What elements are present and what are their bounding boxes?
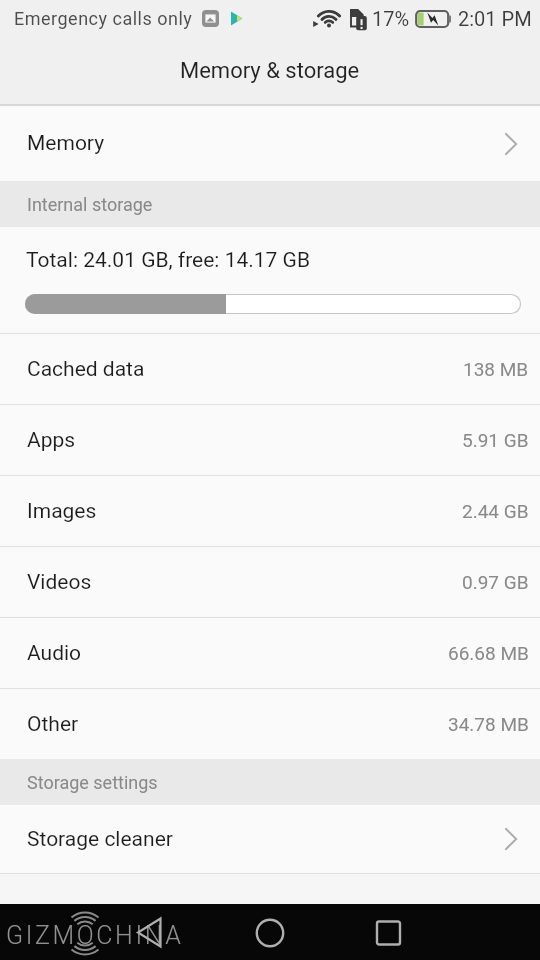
staticText: Other bbox=[27, 712, 79, 737]
staticText: Memory bbox=[27, 131, 105, 156]
button[interactable]: Storage cleaner bbox=[0, 805, 540, 873]
staticText: 5.91 GB bbox=[462, 429, 529, 451]
staticText: 0.97 GB bbox=[462, 571, 529, 593]
staticText: Total: 24.01 GB, free: 14.17 GB bbox=[26, 248, 311, 273]
staticText: Memory & storage bbox=[180, 58, 360, 84]
staticText: Emergency calls only bbox=[14, 8, 193, 29]
button[interactable] bbox=[0, 904, 180, 960]
staticText: Videos bbox=[27, 570, 92, 595]
staticText: 66.68 MB bbox=[448, 642, 529, 664]
staticText: 138 MB bbox=[463, 358, 529, 380]
staticText: Apps bbox=[27, 428, 76, 453]
staticText: 17% bbox=[372, 7, 410, 30]
staticText: GIZMOCHINA bbox=[6, 921, 184, 950]
staticText: Internal storage bbox=[27, 194, 153, 215]
button[interactable] bbox=[180, 904, 360, 960]
button[interactable]: Audio bbox=[0, 618, 540, 688]
button[interactable]: Memory bbox=[0, 106, 540, 181]
staticText: 34.78 MB bbox=[448, 713, 529, 735]
button[interactable]: Cached data bbox=[0, 334, 540, 404]
button[interactable]: Videos bbox=[0, 547, 540, 617]
staticText: Storage cleaner bbox=[27, 827, 173, 852]
staticText: Storage settings bbox=[27, 772, 158, 793]
button[interactable]: Apps bbox=[0, 405, 540, 475]
staticText: Audio bbox=[27, 641, 82, 666]
button[interactable]: Other bbox=[0, 689, 540, 759]
button[interactable]: Images bbox=[0, 476, 540, 546]
staticText: 2:01 PM bbox=[458, 7, 532, 30]
staticText: Cached data bbox=[27, 357, 145, 382]
staticText: 2.44 GB bbox=[462, 500, 529, 522]
staticText: Images bbox=[27, 499, 97, 524]
button[interactable] bbox=[360, 904, 540, 960]
